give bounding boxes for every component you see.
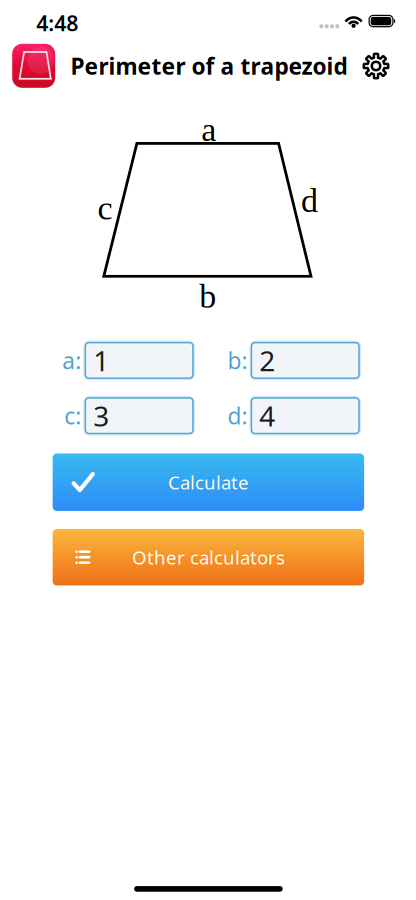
button[interactable]: Side a value: [85, 342, 194, 379]
staticText: Perimeter of a trapezoid: [70, 51, 347, 81]
staticText: 3: [93, 397, 109, 434]
button[interactable]: Calculate: [53, 453, 364, 511]
button[interactable]: Side b value: [251, 342, 360, 379]
button[interactable]: Other calculators: [53, 529, 364, 585]
button[interactable]: Side c value: [85, 397, 194, 434]
button[interactable]: Trapezoid calculator: [12, 44, 55, 88]
staticText: 1: [93, 342, 109, 379]
staticText: c:: [64, 401, 81, 431]
staticText: c: [97, 189, 112, 227]
staticText: a: [201, 111, 216, 148]
button[interactable]: Settings: [361, 51, 391, 81]
staticText: b: [199, 277, 216, 315]
staticText: d:: [227, 401, 247, 431]
staticText: d: [301, 182, 318, 219]
staticText: 2: [259, 342, 275, 379]
staticText: 4:48: [36, 9, 78, 37]
staticText: b:: [227, 345, 247, 375]
staticText: Other calculators: [132, 545, 285, 570]
button[interactable]: Side d value: [251, 397, 360, 434]
staticText: a:: [62, 345, 81, 375]
staticText: 4: [259, 397, 275, 434]
staticText: Calculate: [168, 470, 249, 495]
